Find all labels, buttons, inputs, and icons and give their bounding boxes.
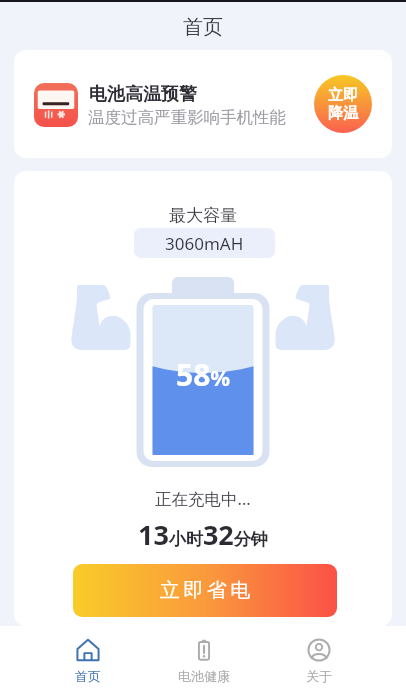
staticText: 3060mAH bbox=[165, 232, 244, 255]
button[interactable]: 高温预警 bbox=[14, 50, 392, 158]
staticText: 立即 降温 bbox=[328, 86, 358, 123]
staticText: 13小时32分钟 bbox=[138, 516, 268, 553]
other: 高温预警 bbox=[34, 83, 78, 127]
button[interactable]: 关于 bbox=[261, 626, 376, 684]
staticText: 正在充电中... bbox=[155, 487, 251, 510]
staticText: 电池高温预警 bbox=[89, 83, 197, 106]
button[interactable]: 立即 降温 bbox=[314, 75, 372, 133]
button[interactable]: 立即省电 bbox=[73, 564, 337, 617]
button[interactable]: 电池健康 bbox=[146, 626, 261, 684]
staticText: 首页 bbox=[75, 668, 101, 684]
staticText: 电池健康 bbox=[178, 668, 230, 684]
staticText: 关于 bbox=[306, 668, 332, 684]
button[interactable]: 首页 bbox=[30, 626, 146, 684]
staticText: 58% bbox=[176, 354, 231, 395]
staticText: 立即省电 bbox=[158, 578, 252, 603]
staticText: 最大容量 bbox=[169, 205, 237, 226]
staticText: 温度过高严重影响手机性能 bbox=[88, 107, 286, 128]
staticText: 首页 bbox=[183, 15, 223, 40]
